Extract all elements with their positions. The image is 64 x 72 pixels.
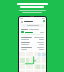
button[interactable]: Location pin — [34, 60, 36, 62]
button[interactable]: Search — [21, 24, 44, 27]
button[interactable]: Menu — [20, 20, 23, 23]
button[interactable] — [21, 37, 44, 40]
button[interactable] — [21, 42, 44, 45]
button[interactable] — [21, 47, 44, 50]
button[interactable] — [21, 31, 44, 33]
